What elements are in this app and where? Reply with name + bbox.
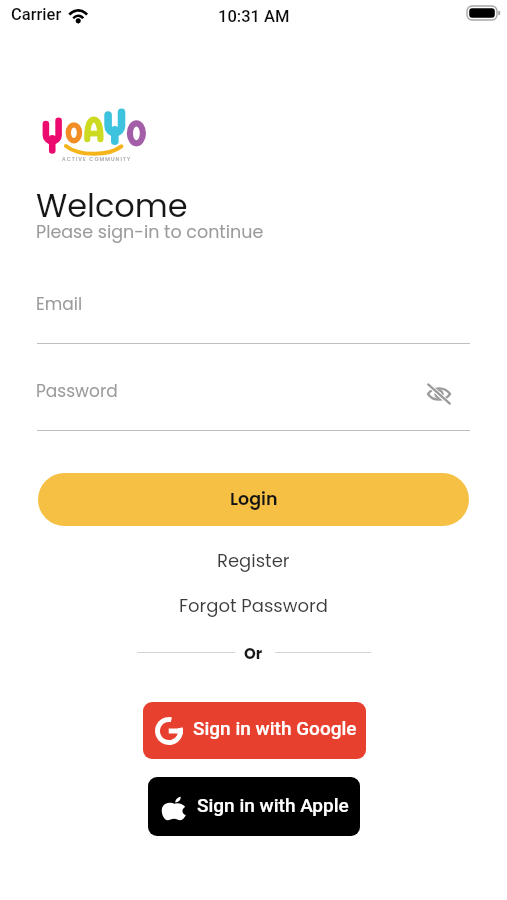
staticText: Register <box>217 548 290 573</box>
staticText: Email <box>36 292 83 316</box>
staticText: Sign in with Google <box>193 717 357 739</box>
button[interactable]: Show password <box>424 379 454 409</box>
staticText: Welcome <box>36 183 188 228</box>
staticText: Login <box>230 487 278 512</box>
staticText: Forgot Password <box>179 593 328 618</box>
button[interactable]: Login <box>38 473 469 526</box>
staticText: 10:31 AM <box>218 7 290 26</box>
staticText: Sign in with Apple <box>197 794 349 816</box>
staticText: Or <box>244 643 263 664</box>
staticText: Password <box>36 379 118 403</box>
button[interactable]: Register <box>0 543 507 577</box>
staticText: ACTIVE COMMUNITY <box>62 156 132 163</box>
staticText: Please sign-in to continue <box>36 220 264 245</box>
button[interactable]: Forgot Password <box>0 588 507 622</box>
button[interactable]: Sign in with Google <box>143 702 366 759</box>
button[interactable]: Sign in with Apple <box>148 777 360 836</box>
staticText: Carrier <box>11 5 62 24</box>
